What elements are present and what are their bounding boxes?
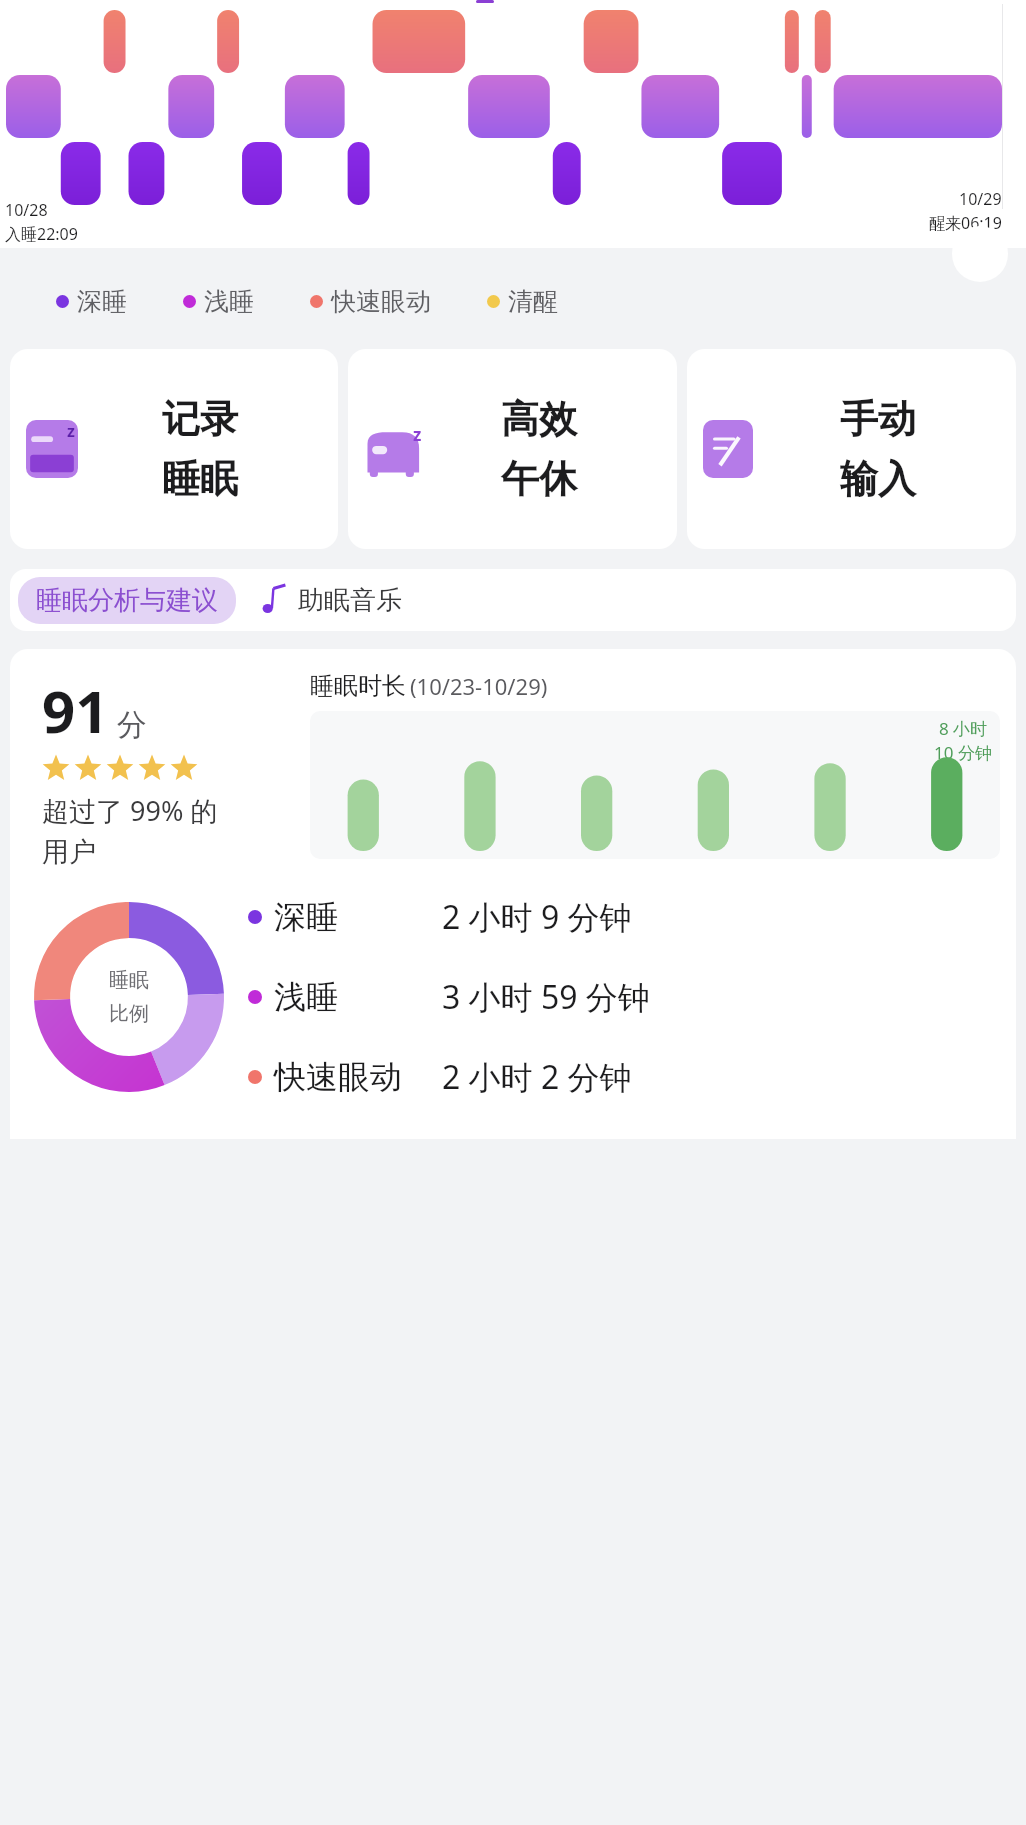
button[interactable]: More xyxy=(952,226,1008,282)
staticText: 记录 xyxy=(162,395,238,443)
staticText: 2 小时 2 分钟 xyxy=(442,1055,632,1099)
other: Sleep music xyxy=(262,583,292,617)
other: Record sleep xyxy=(26,420,78,478)
staticText: 超过了 99% 的 用户 xyxy=(42,792,218,869)
staticText: 午休 xyxy=(501,455,577,503)
staticText: 睡眠时长 xyxy=(310,671,406,701)
staticText: z xyxy=(67,420,75,442)
staticText: 输入 xyxy=(840,455,916,503)
button[interactable]: 快速眼动 xyxy=(248,1055,1000,1099)
staticText: 浅睡 xyxy=(204,286,254,317)
button[interactable]: Efficient nap xyxy=(348,349,677,549)
other: Efficient nap xyxy=(364,423,422,475)
button[interactable]: 清醒 xyxy=(487,286,558,317)
staticText: 入睡22:09 xyxy=(5,223,78,245)
staticText: (10/23-10/29) xyxy=(410,671,548,701)
staticText: 睡眠分析与建议 xyxy=(36,584,218,617)
other: Manual input xyxy=(703,420,753,478)
staticText: 分 xyxy=(117,706,147,744)
staticText: 睡眠 xyxy=(162,455,238,503)
staticText: 快速眼动 xyxy=(331,286,431,317)
staticText: 深睡 xyxy=(77,286,127,317)
staticText: 91 xyxy=(42,671,109,750)
staticText: 10/28 xyxy=(5,199,48,221)
button[interactable]: 深睡 xyxy=(248,895,1000,939)
staticText: 比例 xyxy=(109,1001,149,1026)
staticText: 浅睡 xyxy=(274,977,434,1017)
staticText: 快速眼动 xyxy=(274,1057,434,1097)
button[interactable]: 快速眼动 xyxy=(310,286,431,317)
staticText: 睡眠 xyxy=(109,968,149,993)
button[interactable]: 深睡 xyxy=(56,286,127,317)
staticText: 深睡 xyxy=(274,897,434,937)
staticText: 3 小时 59 分钟 xyxy=(442,975,650,1019)
button[interactable]: 浅睡 xyxy=(248,975,1000,1019)
button[interactable]: Manual input xyxy=(687,349,1016,549)
button[interactable]: Record sleep xyxy=(10,349,338,549)
staticText: z xyxy=(413,423,422,446)
staticText: 10/29 xyxy=(959,188,1002,210)
staticText: 醒来06:19 xyxy=(929,212,1002,234)
staticText: 2 小时 9 分钟 xyxy=(442,895,632,939)
button[interactable]: 睡眠分析与建议 xyxy=(18,577,236,624)
button[interactable]: Sleep music xyxy=(256,576,408,624)
staticText: 助眠音乐 xyxy=(298,584,402,617)
staticText: 8 小时 10 分钟 xyxy=(934,717,992,764)
staticText: 高效 xyxy=(501,395,577,443)
staticText: 手动 xyxy=(840,395,916,443)
button[interactable]: 浅睡 xyxy=(183,286,254,317)
staticText: 清醒 xyxy=(508,286,558,317)
